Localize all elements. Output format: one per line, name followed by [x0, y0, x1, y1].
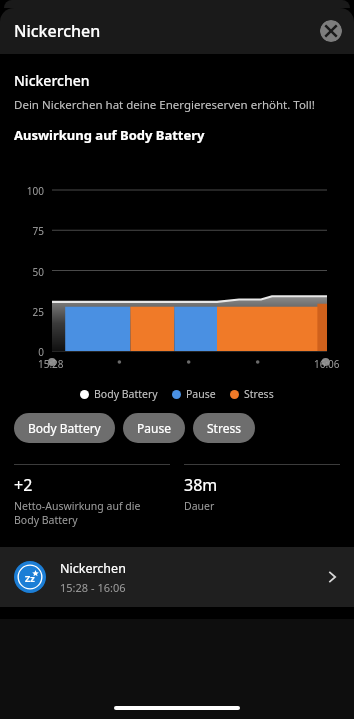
- button[interactable]: Stress: [193, 413, 255, 443]
- staticText: Pause: [137, 420, 171, 436]
- staticText: Dauer: [184, 499, 215, 513]
- staticText: Pause: [186, 387, 216, 401]
- staticText: Zz: [25, 572, 35, 584]
- staticText: 15:28 - 16:06: [60, 580, 126, 595]
- staticText: 50: [0, 265, 44, 279]
- button[interactable]: Zz: [0, 547, 354, 607]
- staticText: 0: [0, 345, 44, 359]
- staticText: Dein Nickerchen hat deine Energiereserve…: [14, 97, 315, 113]
- staticText: +2: [14, 474, 33, 496]
- staticText: Stress: [244, 387, 274, 401]
- button[interactable]: Schließen: [320, 20, 342, 42]
- staticText: Stress: [207, 420, 241, 436]
- staticText: Nickerchen: [60, 560, 126, 577]
- button[interactable]: Body Battery: [14, 413, 115, 443]
- staticText: Nickerchen: [14, 71, 90, 90]
- staticText: Body Battery: [28, 420, 101, 436]
- staticText: 100: [0, 184, 44, 198]
- staticText: 25: [0, 305, 44, 319]
- staticText: 16:06: [314, 357, 340, 371]
- staticText: 15:28: [38, 357, 64, 371]
- staticText: Netto-Auswirkung auf die Body Battery: [14, 499, 141, 527]
- button[interactable]: Pause: [123, 413, 185, 443]
- staticText: Auswirkung auf Body Battery: [14, 126, 205, 144]
- staticText: 75: [0, 224, 44, 238]
- other: Details öffnen: [324, 569, 340, 585]
- staticText: Body Battery: [94, 387, 158, 401]
- staticText: 38m: [184, 474, 218, 496]
- staticText: Nickerchen: [14, 20, 101, 42]
